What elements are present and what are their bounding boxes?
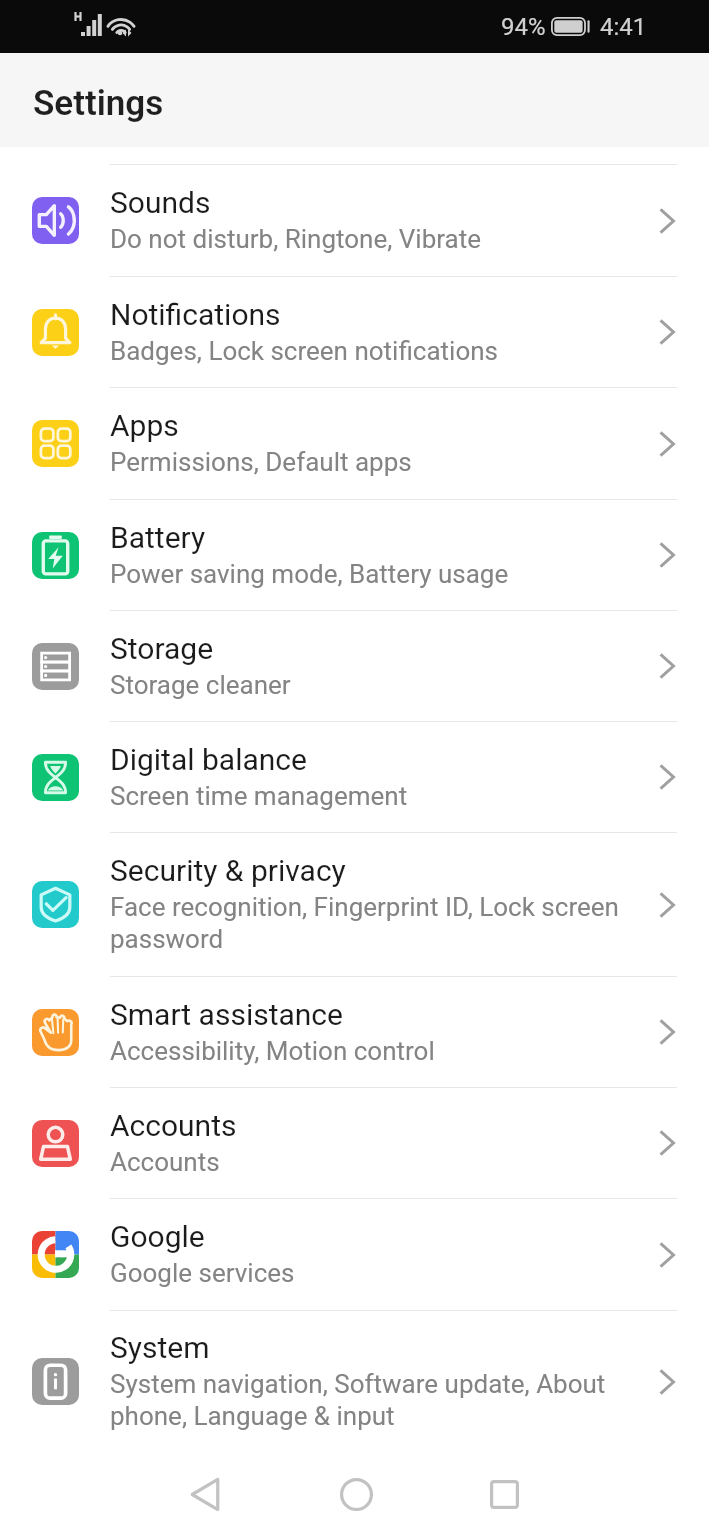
button[interactable]: Battery [0, 500, 709, 610]
staticText: Badges, Lock screen notifications [110, 336, 499, 366]
staticText: Google [110, 1219, 205, 1254]
staticText: Battery [110, 520, 206, 555]
staticText: Face recognition, Fingerprint ID, Lock s… [110, 892, 619, 955]
button[interactable]: Storage [0, 611, 709, 721]
button[interactable]: Recent apps [462, 1452, 546, 1536]
button[interactable]: Apps [0, 388, 709, 499]
staticText: Notifications [110, 297, 281, 332]
staticText: Power saving mode, Battery usage [110, 559, 509, 589]
staticText: Permissions, Default apps [110, 447, 412, 477]
staticText: Accounts [110, 1108, 237, 1143]
button[interactable]: Home [314, 1452, 398, 1536]
staticText: System navigation, Software update, Abou… [110, 1369, 606, 1432]
staticText: 4:41 [600, 13, 647, 41]
button[interactable]: System [0, 1311, 709, 1452]
button[interactable]: Notifications [0, 277, 709, 387]
button[interactable]: Smart assistance [0, 977, 709, 1087]
staticText: Digital balance [110, 742, 307, 777]
button[interactable]: Digital balance [0, 722, 709, 832]
staticText: Smart assistance [110, 997, 343, 1032]
staticText: Accounts [110, 1147, 220, 1177]
staticText: Storage [110, 631, 214, 666]
button[interactable]: Back [163, 1452, 247, 1536]
button[interactable]: Google [0, 1199, 709, 1310]
staticText: Settings [33, 83, 164, 124]
staticText: Do not disturb, Ringtone, Vibrate [110, 224, 482, 254]
staticText: Sounds [110, 185, 211, 220]
staticText: Screen time management [110, 781, 408, 811]
staticText: Apps [110, 408, 179, 443]
staticText: System [110, 1330, 210, 1365]
staticText: Security & privacy [110, 853, 346, 888]
staticText: Storage cleaner [110, 670, 291, 700]
button[interactable]: Sounds [0, 165, 709, 276]
button[interactable]: Security & privacy [0, 833, 709, 976]
staticText: 94% [501, 13, 546, 41]
button[interactable]: Accounts [0, 1088, 709, 1198]
staticText: Google services [110, 1258, 295, 1288]
staticText: Accessibility, Motion control [110, 1036, 435, 1066]
